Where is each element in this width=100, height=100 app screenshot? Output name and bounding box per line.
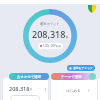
- staticText: 1/20に20P失効: [43, 44, 61, 48]
- staticText: P: [66, 35, 69, 40]
- button[interactable]: テーマで運用: [51, 73, 92, 80]
- button[interactable]: 連携をチェック: [69, 65, 93, 71]
- staticText: はじめる: [66, 89, 81, 94]
- button[interactable]: Beginner badge: [88, 5, 96, 13]
- button[interactable]: [10, 95, 40, 100]
- staticText: おまかせで運用: [17, 75, 42, 79]
- staticText: テーマで運用: [61, 75, 82, 79]
- button[interactable]: [3, 78, 48, 100]
- staticText: 208,318: [9, 85, 30, 92]
- button[interactable]: [89, 73, 96, 80]
- button[interactable]: おまかせで運用: [9, 73, 49, 80]
- staticText: P: [30, 88, 32, 92]
- staticText: 連携をチェック: [73, 66, 93, 70]
- button[interactable]: 1/20に20P失効: [40, 44, 61, 48]
- staticText: 208,318: [32, 28, 66, 40]
- staticText: 通常ポイント: [40, 22, 60, 26]
- button[interactable]: [51, 78, 97, 100]
